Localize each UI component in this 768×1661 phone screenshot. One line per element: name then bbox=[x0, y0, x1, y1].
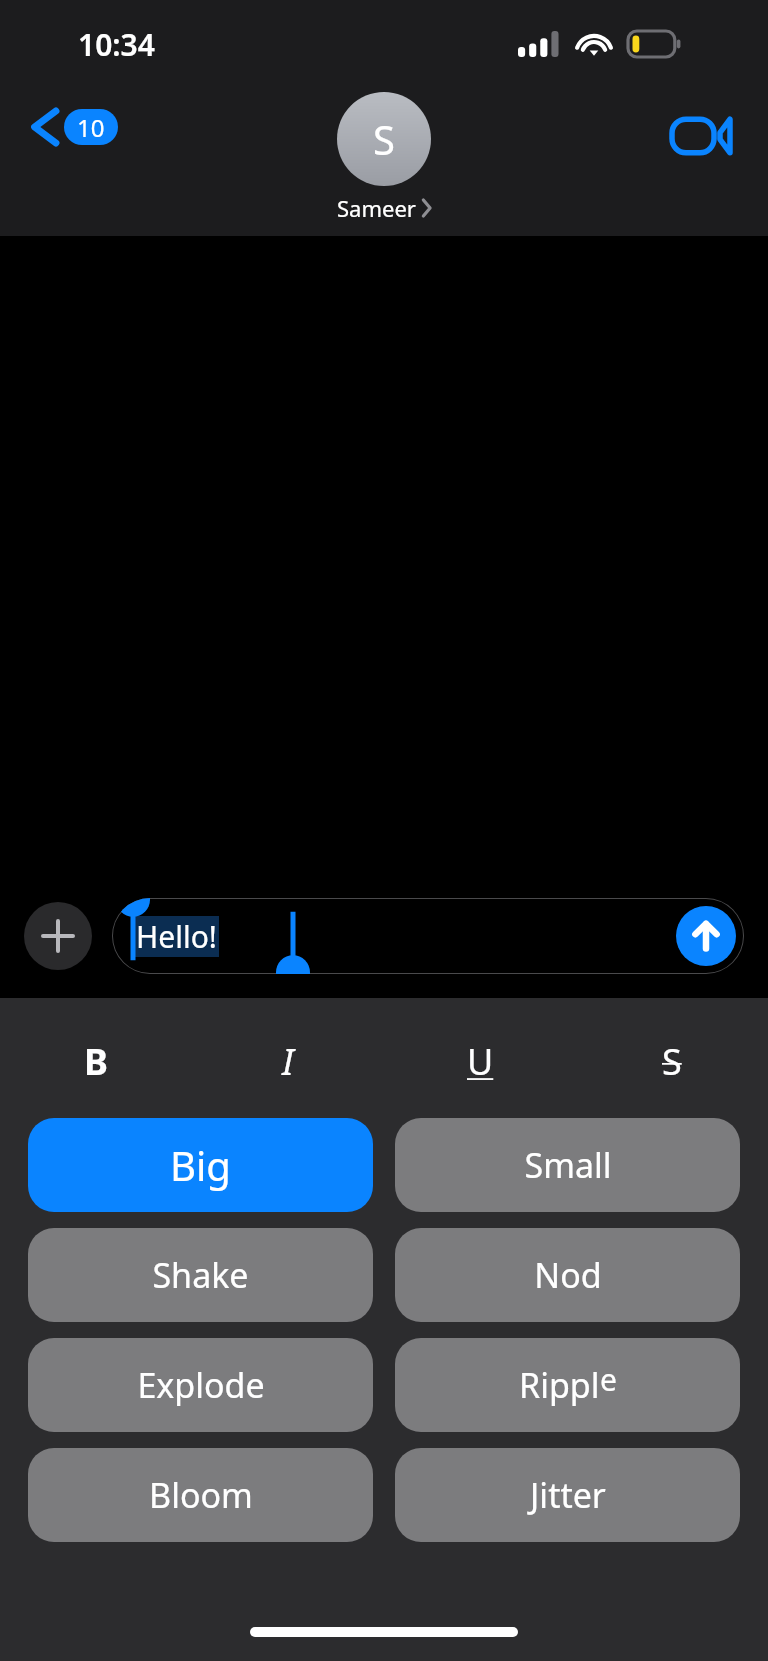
button[interactable]: Add attachment bbox=[24, 902, 92, 970]
button[interactable]: S bbox=[337, 92, 431, 223]
button[interactable]: Shake bbox=[28, 1228, 373, 1322]
staticText: B bbox=[84, 1037, 108, 1086]
staticText: U bbox=[467, 1037, 494, 1086]
button[interactable]: Bloom bbox=[28, 1448, 373, 1542]
staticText: I bbox=[282, 1037, 294, 1086]
staticText: Bloom bbox=[149, 1472, 253, 1518]
button[interactable]: B bbox=[0, 1030, 192, 1092]
staticText: S bbox=[662, 1037, 682, 1086]
staticText: Explode bbox=[137, 1362, 265, 1408]
staticText: Rippl bbox=[519, 1362, 600, 1408]
button[interactable]: Send bbox=[676, 906, 736, 966]
button[interactable]: Hello! bbox=[112, 898, 744, 974]
staticText: S bbox=[373, 112, 395, 166]
staticText: Jitter bbox=[530, 1472, 606, 1518]
staticText: e bbox=[600, 1359, 617, 1393]
staticText: Big bbox=[170, 1138, 231, 1192]
button[interactable]: Explode bbox=[28, 1338, 373, 1432]
staticText: 10 bbox=[77, 111, 105, 144]
staticText: Hello! bbox=[136, 916, 217, 957]
button[interactable]: S bbox=[576, 1030, 768, 1092]
button[interactable]: U bbox=[384, 1030, 576, 1092]
button[interactable]: Jitter bbox=[395, 1448, 740, 1542]
staticText: 10:34 bbox=[78, 24, 155, 65]
button[interactable]: FaceTime video call bbox=[670, 110, 734, 162]
button[interactable]: Rippl bbox=[395, 1338, 740, 1432]
button[interactable]: I bbox=[192, 1030, 384, 1092]
button[interactable]: Big bbox=[28, 1118, 373, 1212]
staticText: Sameer bbox=[337, 193, 416, 223]
button[interactable]: Back, 10 unread bbox=[28, 104, 122, 150]
staticText: Nod bbox=[534, 1252, 602, 1298]
button[interactable]: Small bbox=[395, 1118, 740, 1212]
staticText: Shake bbox=[152, 1252, 249, 1298]
button[interactable]: Nod bbox=[395, 1228, 740, 1322]
staticText: Small bbox=[524, 1142, 612, 1188]
